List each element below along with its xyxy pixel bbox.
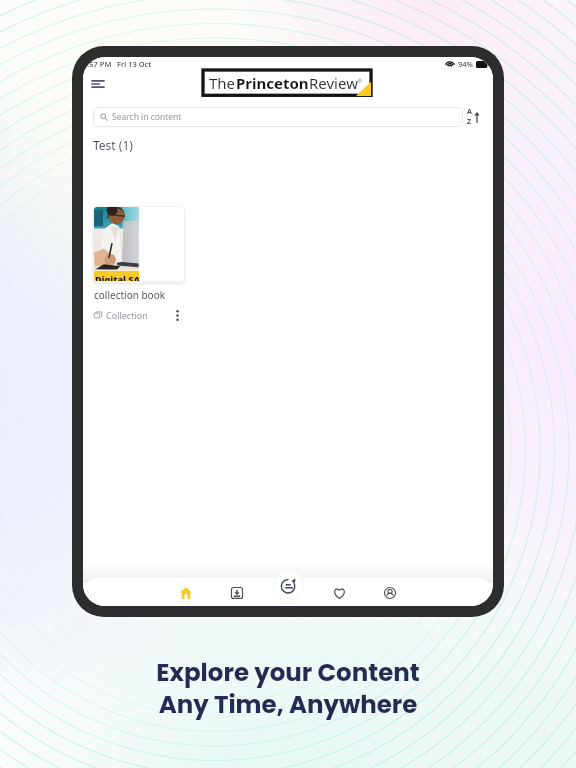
staticText: 94% (458, 59, 473, 69)
staticText: A (467, 107, 472, 117)
button[interactable]: More options (170, 308, 184, 322)
button[interactable]: Profile (377, 580, 403, 606)
staticText: Digital SAT (95, 273, 140, 281)
button[interactable]: Digital SAT (94, 207, 184, 281)
staticText: Search in content (112, 111, 182, 123)
staticText: Test (1) (93, 137, 133, 153)
staticText: Explore your Content Any Time, Anywhere (156, 655, 420, 721)
staticText: Fri 13 Oct (117, 59, 152, 69)
button[interactable]: Menu (86, 72, 110, 96)
button[interactable]: Sort A to Z (461, 105, 485, 129)
staticText: The (209, 73, 236, 93)
staticText: Collection (106, 309, 148, 321)
staticText: 2:57 PM (83, 59, 112, 69)
staticText: Princeton (236, 73, 309, 93)
staticText: collection book (94, 288, 166, 302)
staticText: Review (309, 73, 358, 93)
button[interactable]: Sync (273, 570, 304, 601)
button[interactable]: Favorites (326, 580, 352, 606)
staticText: Z (467, 117, 472, 127)
button[interactable]: Home (173, 580, 199, 606)
button[interactable]: Search in content (93, 107, 463, 127)
staticText: ® (358, 78, 362, 84)
button[interactable]: Downloads (224, 580, 250, 606)
